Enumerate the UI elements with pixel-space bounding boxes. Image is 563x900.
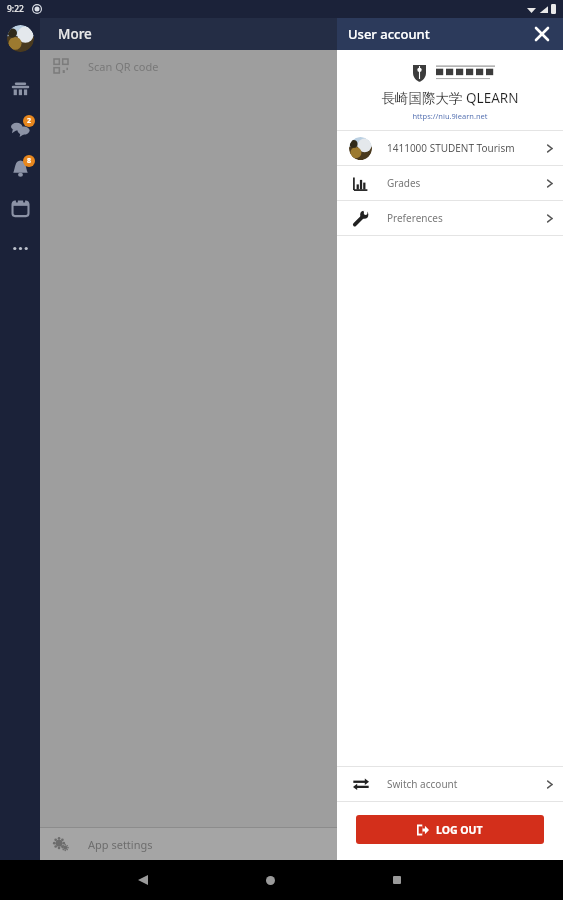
button[interactable]: Dashboard (0, 68, 40, 108)
button[interactable]: Home (253, 863, 287, 897)
staticText: Scan QR code (88, 59, 159, 74)
staticText: 2 (27, 116, 32, 126)
button[interactable]: Profile (7, 25, 34, 52)
staticText: LOG OUT (436, 823, 483, 837)
button[interactable]: 1411000 STUDENT Tourism (337, 131, 563, 165)
button[interactable]: Notifications (0, 148, 40, 188)
button[interactable]: Switch account (337, 767, 563, 801)
staticText: More (58, 25, 92, 43)
button[interactable]: Close (530, 22, 554, 46)
staticText: Grades (387, 176, 421, 190)
staticText: User account (348, 25, 430, 43)
button[interactable]: App settings (40, 828, 563, 860)
button[interactable]: Messages (0, 108, 40, 148)
button[interactable]: Calendar (0, 188, 40, 228)
button[interactable]: Back (126, 863, 160, 897)
staticText: 1411000 STUDENT Tourism (387, 141, 515, 155)
button[interactable]: LOG OUT (356, 815, 544, 844)
staticText: 長崎国際大学 QLEARN (337, 89, 563, 107)
staticText: 8 (27, 156, 32, 166)
button[interactable]: Scan QR code (40, 50, 563, 82)
staticText: https://niu.9learn.net (337, 111, 563, 121)
staticText: Preferences (387, 211, 443, 225)
button[interactable]: Grades (337, 166, 563, 200)
staticText: App settings (88, 837, 153, 852)
button[interactable]: More (0, 228, 40, 268)
button[interactable]: Recents (380, 863, 414, 897)
staticText: 9:22 (7, 3, 24, 15)
staticText: Switch account (387, 777, 458, 791)
button[interactable]: Preferences (337, 201, 563, 235)
